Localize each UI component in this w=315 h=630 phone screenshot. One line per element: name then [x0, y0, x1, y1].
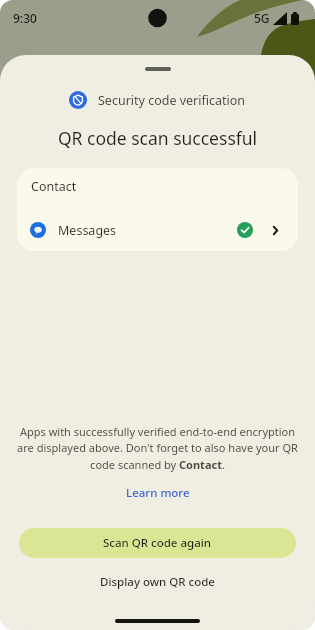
staticText: Apps with successfully verified end-to-e…	[14, 424, 301, 473]
staticText: Contact	[31, 178, 77, 195]
staticText: Scan QR code again	[103, 535, 212, 551]
button[interactable]: Messages	[17, 209, 298, 251]
staticText: 9:30	[13, 10, 37, 26]
button[interactable]: Display own QR code	[19, 569, 296, 595]
staticText: Display own QR code	[100, 574, 215, 590]
button[interactable]: Scan QR code again	[19, 528, 296, 558]
staticText: 5G	[254, 10, 270, 26]
staticText: Messages	[58, 222, 117, 239]
other: Open details	[270, 225, 281, 236]
button[interactable]: Learn more	[116, 481, 200, 505]
staticText: Security code verification	[98, 92, 246, 109]
staticText: QR code scan successful	[0, 126, 315, 150]
